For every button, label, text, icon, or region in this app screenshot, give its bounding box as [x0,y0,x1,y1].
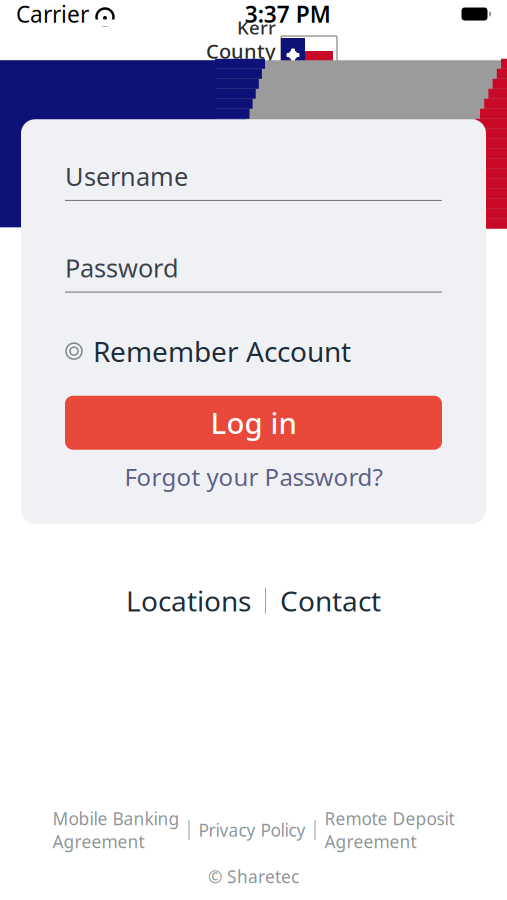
staticText: Log in [210,403,296,442]
button[interactable]: Mobile Banking Agreement [43,803,188,857]
button[interactable]: Remember Account [21,333,486,370]
button[interactable]: Remote Deposit Agreement [315,803,463,857]
staticText: © Sharetec [208,865,299,888]
staticText: Mobile Banking Agreement [52,807,179,853]
staticText: 3:37 PM [245,0,331,29]
button[interactable]: Log in [65,396,442,450]
staticText: County [206,38,276,64]
button[interactable]: Privacy Policy [189,814,314,845]
staticText: Contact [280,582,381,619]
staticText: Carrier [16,0,89,29]
staticText: Credit Union [169,78,276,101]
staticText: Password [65,251,179,284]
staticText: Username [65,159,188,193]
staticText: Remote Deposit Agreement [324,807,454,853]
button[interactable]: Forgot your Password? [65,462,442,492]
staticText: Locations [126,582,251,619]
button[interactable]: Contact [266,576,395,625]
staticText: Privacy Policy [198,818,305,841]
staticText: Forgot your Password? [124,461,382,493]
staticText: Kerr [237,15,276,40]
button[interactable]: Locations [112,576,265,625]
staticText: Federal [228,62,276,80]
staticText: Remember Account [93,333,351,370]
